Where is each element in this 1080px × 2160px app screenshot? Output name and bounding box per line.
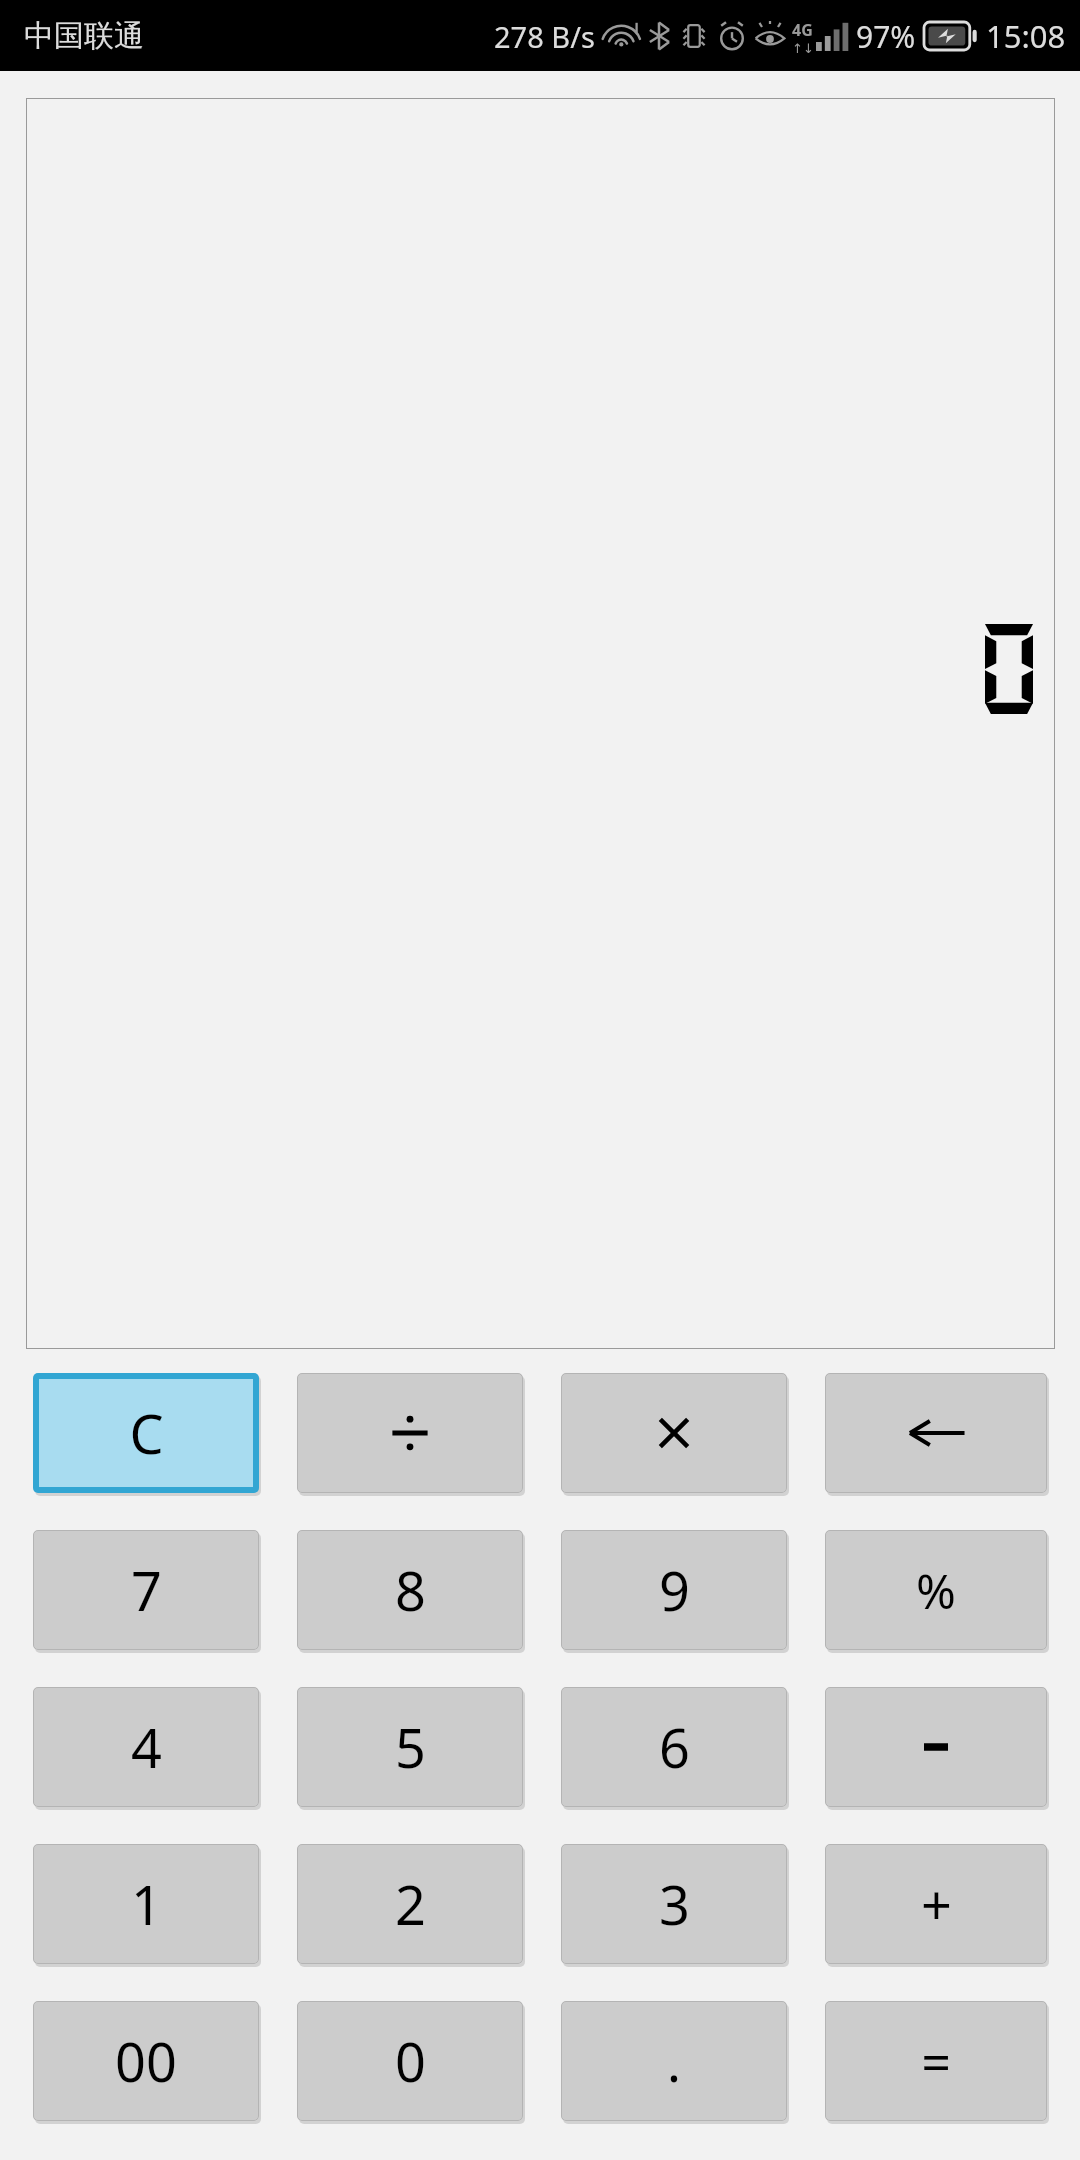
button[interactable]: Backspace <box>825 1373 1047 1493</box>
staticText: 1 <box>131 1867 162 1941</box>
button[interactable]: 1 <box>33 1844 259 1964</box>
staticText: 中国联通 <box>24 17 144 55</box>
staticText: 2 <box>395 1867 426 1941</box>
button[interactable]: Divide <box>297 1373 523 1493</box>
button[interactable]: 0 <box>297 2001 523 2121</box>
staticText: 8 <box>395 1553 426 1627</box>
staticText: 5 <box>395 1710 426 1784</box>
button[interactable]: Minus <box>825 1687 1047 1807</box>
staticText: 15:08 <box>986 15 1066 57</box>
button[interactable]: . <box>561 2001 787 2121</box>
button[interactable]: 2 <box>297 1844 523 1964</box>
staticText: 4 <box>131 1710 162 1784</box>
staticText: 6 <box>659 1710 690 1784</box>
staticText: ↑↓ <box>792 41 814 53</box>
button[interactable]: + <box>825 1844 1047 1964</box>
button[interactable]: Clear <box>39 1379 253 1487</box>
staticText: = <box>921 2026 951 2097</box>
button[interactable]: Percent <box>825 1530 1047 1650</box>
staticText: + <box>921 1867 952 1941</box>
button[interactable]: 9 <box>561 1530 787 1650</box>
button[interactable]: 6 <box>561 1687 787 1807</box>
staticText: 4G <box>792 19 813 41</box>
staticText: 7 <box>131 1553 162 1627</box>
staticText: C <box>129 1396 164 1470</box>
staticText: % <box>916 1558 956 1623</box>
button[interactable]: 5 <box>297 1687 523 1807</box>
staticText: . <box>667 2026 681 2097</box>
button[interactable]: 3 <box>561 1844 787 1964</box>
staticText: 9 <box>659 1553 690 1627</box>
staticText: 278 B/s <box>494 17 595 56</box>
button[interactable]: 7 <box>33 1530 259 1650</box>
staticText: 97% <box>856 16 916 57</box>
button[interactable]: 8 <box>297 1530 523 1650</box>
button[interactable]: Equals <box>825 2001 1047 2121</box>
button[interactable]: Multiply <box>561 1373 787 1493</box>
button[interactable]: 00 <box>33 2001 259 2121</box>
staticText: 3 <box>659 1867 690 1941</box>
staticText: 0 <box>395 2024 426 2098</box>
staticText: 00 <box>115 2024 177 2098</box>
button[interactable]: 4 <box>33 1687 259 1807</box>
